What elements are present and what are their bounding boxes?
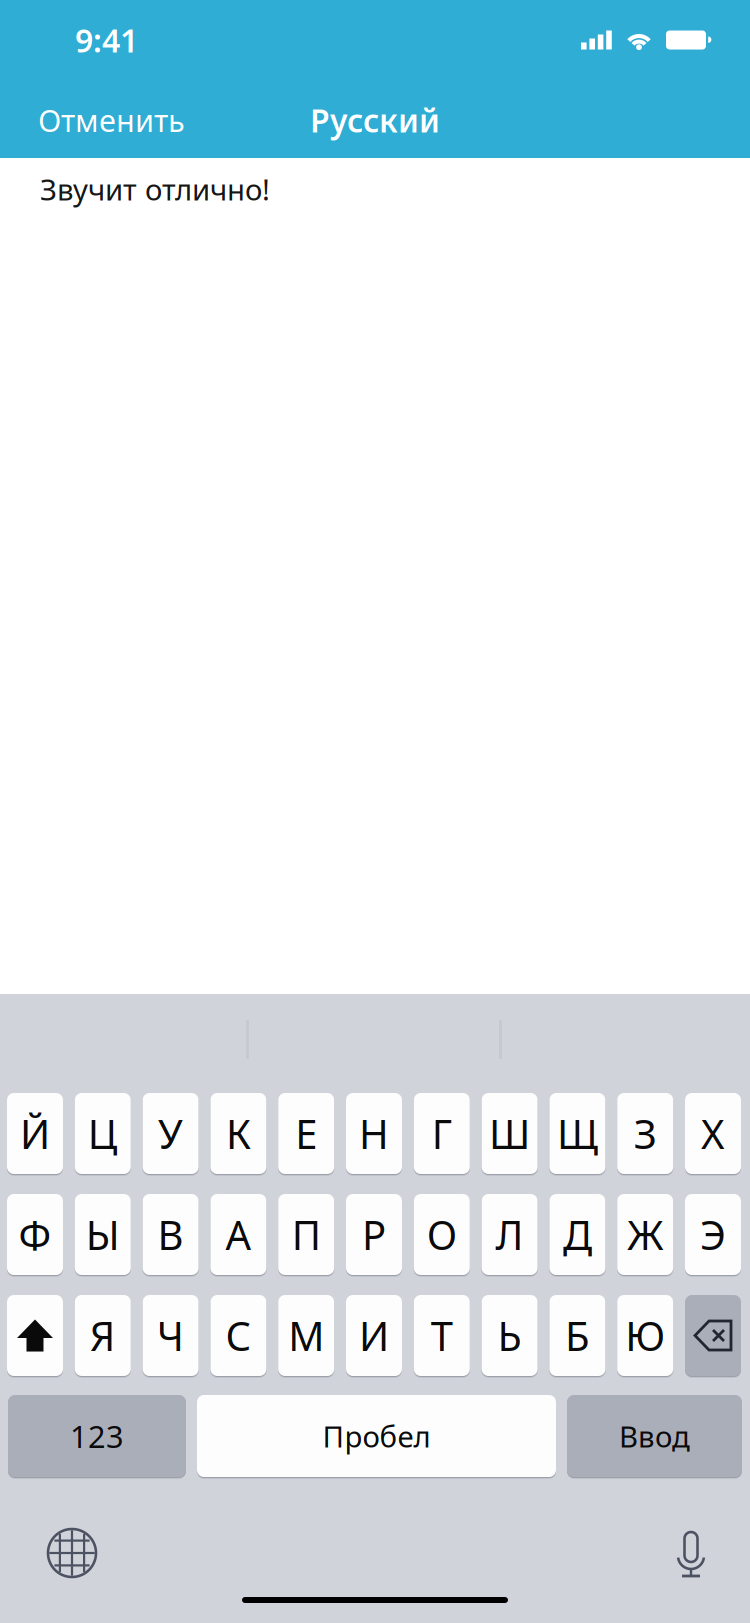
button[interactable]: Ь [482, 1295, 538, 1376]
staticText: Т [431, 1309, 453, 1362]
button[interactable]: Р [346, 1194, 402, 1275]
staticText: Щ [557, 1107, 598, 1160]
staticText: И [359, 1309, 389, 1362]
button[interactable]: Пробел [197, 1395, 556, 1477]
button[interactable]: А [210, 1194, 266, 1275]
staticText: О [427, 1208, 457, 1261]
button[interactable]: 123 [8, 1395, 186, 1477]
button[interactable]: Щ [549, 1093, 605, 1174]
staticText: Ввод [619, 1416, 690, 1455]
staticText: Ж [627, 1208, 663, 1261]
staticText: 123 [70, 1416, 124, 1456]
button[interactable]: О [414, 1194, 470, 1275]
button[interactable]: Н [346, 1093, 402, 1174]
staticText: Ч [157, 1309, 184, 1362]
staticText: Русский [310, 99, 440, 141]
button[interactable]: Ю [617, 1295, 673, 1376]
button[interactable]: Ч [143, 1295, 199, 1376]
button[interactable]: Т [414, 1295, 470, 1376]
staticText: Л [496, 1208, 524, 1261]
staticText: Г [432, 1107, 452, 1160]
staticText: Р [362, 1208, 386, 1261]
button[interactable]: Г [414, 1093, 470, 1174]
button[interactable]: С [210, 1295, 266, 1376]
button[interactable]: З [617, 1093, 673, 1174]
staticText: Н [359, 1107, 389, 1160]
button[interactable]: Ф [7, 1194, 63, 1275]
staticText: Пробел [322, 1416, 430, 1455]
staticText: Ф [18, 1208, 51, 1261]
button[interactable]: Shift [7, 1295, 63, 1376]
staticText: Б [565, 1309, 590, 1362]
button[interactable]: Ы [75, 1194, 131, 1275]
staticText: У [158, 1107, 183, 1160]
button[interactable]: Й [7, 1093, 63, 1174]
staticText: Ш [489, 1107, 530, 1160]
staticText: В [158, 1208, 184, 1261]
staticText: Й [20, 1107, 50, 1160]
button[interactable]: Я [75, 1295, 131, 1376]
button[interactable]: Отменить [38, 94, 238, 146]
staticText: Ю [625, 1309, 665, 1362]
button[interactable]: М [278, 1295, 334, 1376]
button[interactable]: Next keyboard [46, 1527, 98, 1579]
button[interactable]: П [278, 1194, 334, 1275]
staticText: С [225, 1309, 251, 1362]
staticText: З [634, 1107, 657, 1160]
button[interactable]: Delete [685, 1295, 741, 1376]
staticText: А [225, 1208, 251, 1261]
staticText: Д [563, 1208, 592, 1261]
button[interactable]: Е [278, 1093, 334, 1174]
staticText: Звучит отлично! [40, 169, 270, 208]
button[interactable]: Л [482, 1194, 538, 1275]
button[interactable]: Dictation [675, 1523, 707, 1571]
staticText: М [288, 1309, 324, 1362]
button[interactable]: Ш [482, 1093, 538, 1174]
staticText: Отменить [38, 100, 185, 140]
staticText: Ы [86, 1208, 120, 1261]
button[interactable]: Э [685, 1194, 741, 1275]
button[interactable]: В [143, 1194, 199, 1275]
button[interactable]: Ввод [567, 1395, 742, 1477]
button[interactable]: Ж [617, 1194, 673, 1275]
staticText: Ц [88, 1107, 118, 1160]
button[interactable]: И [346, 1295, 402, 1376]
staticText: П [292, 1208, 321, 1261]
staticText: Ь [498, 1309, 522, 1362]
button[interactable]: Д [549, 1194, 605, 1275]
staticText: Э [700, 1208, 726, 1261]
staticText: Е [295, 1107, 317, 1160]
button[interactable]: У [143, 1093, 199, 1174]
button[interactable]: Б [549, 1295, 605, 1376]
staticText: Я [90, 1309, 116, 1362]
button[interactable]: Х [685, 1093, 741, 1174]
staticText: Х [701, 1107, 725, 1160]
staticText: 9:41 [75, 19, 138, 61]
staticText: К [226, 1107, 251, 1160]
button[interactable]: К [210, 1093, 266, 1174]
button[interactable]: Ц [75, 1093, 131, 1174]
